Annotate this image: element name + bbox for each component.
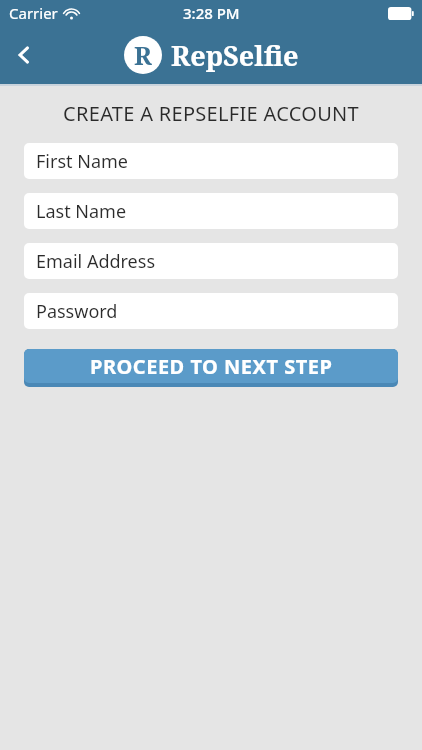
staticText: Email Address (36, 249, 156, 274)
button[interactable]: Back (0, 31, 48, 79)
staticText: First Name (36, 149, 128, 174)
staticText: PROCEED TO NEXT STEP (90, 353, 333, 380)
staticText: Last Name (36, 199, 127, 224)
button[interactable]: PROCEED TO NEXT STEP (24, 349, 398, 387)
button[interactable]: Last Name (24, 193, 398, 229)
button[interactable]: First Name (24, 143, 398, 179)
staticText: R (134, 38, 152, 72)
staticText: RepSelfie (171, 37, 299, 74)
staticText: Password (36, 299, 118, 324)
button[interactable]: Email Address (24, 243, 398, 279)
staticText: CREATE A REPSELFIE ACCOUNT (0, 100, 422, 127)
button[interactable]: Password (24, 293, 398, 329)
staticText: Carrier (9, 3, 58, 23)
staticText: 3:28 PM (183, 3, 240, 23)
